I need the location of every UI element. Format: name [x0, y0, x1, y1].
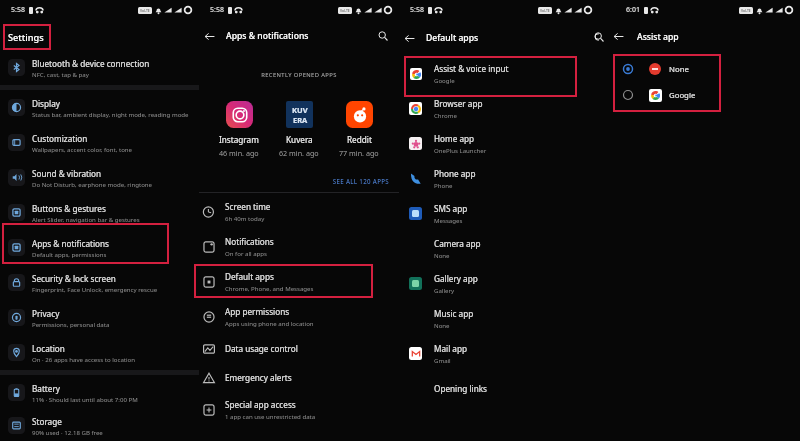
staticText: Default apps — [426, 32, 479, 44]
staticText: 5:58 — [210, 5, 224, 15]
staticText: Home app — [434, 133, 475, 144]
staticText: Messages — [434, 216, 463, 224]
staticText: Phone — [434, 181, 453, 189]
staticText: SMS app — [434, 203, 468, 214]
button[interactable]: Default apps — [199, 264, 399, 299]
staticText: Assist & voice input — [434, 63, 509, 74]
staticText: Kuvera — [286, 134, 313, 145]
staticText: Security & lock screen — [32, 273, 116, 284]
staticText: 46 min. ago — [219, 148, 259, 158]
button[interactable]: Apps & notifications — [0, 230, 199, 265]
staticText: Buttons & gestures — [32, 203, 106, 214]
staticText: Display — [32, 98, 60, 109]
button[interactable]: Browser app — [399, 91, 599, 126]
button[interactable]: Storage — [0, 410, 199, 441]
staticText: None — [434, 251, 450, 259]
staticText: Phone app — [434, 168, 476, 179]
staticText: Special app access — [225, 399, 296, 410]
button[interactable]: Assist & voice input — [399, 56, 599, 91]
button[interactable]: Opening links — [399, 371, 599, 406]
button[interactable]: KUV — [279, 101, 319, 158]
button[interactable]: SEE ALL 120 APPS — [199, 177, 389, 185]
button[interactable]: App permissions — [199, 299, 399, 334]
staticText: 62 min. ago — [279, 148, 319, 158]
staticText: Apps & notifications — [226, 30, 309, 42]
staticText: On for all apps — [225, 249, 267, 257]
staticText: Data usage control — [225, 343, 298, 354]
staticText: Gallery — [434, 286, 455, 294]
staticText: Gallery app — [434, 273, 478, 284]
staticText: RECENTLY OPENED APPS — [199, 71, 399, 79]
staticText: Music app — [434, 308, 474, 319]
staticText: Do Not Disturb, earphone mode, ringtone — [32, 180, 153, 188]
button[interactable]: Privacy — [0, 300, 199, 335]
button[interactable]: Instagram — [219, 101, 259, 158]
staticText: Camera app — [434, 238, 481, 249]
staticText: Customization — [32, 133, 88, 144]
button[interactable]: Back — [204, 31, 215, 42]
button[interactable]: Location — [0, 335, 199, 370]
staticText: Emergency alerts — [225, 372, 292, 383]
staticText: VoLTE — [140, 8, 150, 13]
staticText: Screen time — [225, 201, 271, 212]
button[interactable]: Google — [599, 82, 800, 108]
button[interactable]: Search — [594, 32, 604, 42]
staticText: Gmail — [434, 356, 451, 364]
staticText: None — [669, 64, 689, 75]
button[interactable]: Camera app — [399, 231, 599, 266]
button[interactable]: Battery — [0, 375, 199, 410]
staticText: Reddit — [347, 134, 372, 145]
staticText: Google — [669, 90, 696, 101]
button[interactable]: Data usage control — [199, 334, 399, 363]
staticText: Apps & notifications — [32, 238, 110, 249]
button[interactable]: Display — [0, 90, 199, 125]
staticText: Instagram — [219, 134, 259, 145]
button[interactable]: Reddit — [339, 101, 379, 158]
staticText: Opening links — [434, 383, 488, 394]
button[interactable]: Phone app — [399, 161, 599, 196]
button[interactable]: None — [599, 56, 800, 82]
staticText: Wallpapers, accent color, font, tone — [32, 145, 133, 153]
staticText: 77 min. ago — [339, 148, 379, 158]
staticText: 6:01 — [626, 5, 640, 15]
button[interactable]: Customization — [0, 125, 199, 160]
staticText: Notifications — [225, 236, 274, 247]
button[interactable]: Notifications — [199, 229, 399, 264]
button[interactable]: Sound & vibration — [0, 160, 199, 195]
button[interactable]: Home app — [399, 126, 599, 161]
button[interactable]: Back — [404, 33, 415, 44]
button[interactable]: Music app — [399, 301, 599, 336]
staticText: 6h 40m today — [225, 214, 265, 222]
button[interactable]: Buttons & gestures — [0, 195, 199, 230]
staticText: Sound & vibration — [32, 168, 102, 179]
staticText: Default apps — [225, 271, 274, 282]
staticText: VoLTE — [340, 8, 350, 13]
button[interactable]: Bluetooth & device connection — [0, 50, 199, 85]
button[interactable]: Security & lock screen — [0, 265, 199, 300]
staticText: ERA — [293, 115, 308, 125]
staticText: None — [434, 321, 450, 329]
staticText: Chrome, Phone, and Messages — [225, 284, 314, 292]
staticText: Default apps, permissions — [32, 250, 107, 258]
staticText: 90% used · 12.18 GB free — [32, 428, 103, 436]
staticText: Chrome — [434, 111, 457, 119]
button[interactable]: Special app access — [199, 392, 399, 427]
button[interactable]: Emergency alerts — [199, 363, 399, 392]
button[interactable]: Search — [594, 33, 604, 43]
staticText: KUV — [292, 105, 308, 115]
staticText: 5:58 — [410, 5, 424, 15]
staticText: Privacy — [32, 308, 60, 319]
staticText: Bluetooth & device connection — [32, 58, 150, 69]
button[interactable]: Search — [378, 31, 388, 41]
staticText: Fingerprint, Face Unlock, emergency resc… — [32, 285, 158, 293]
staticText: On · 26 apps have access to location — [32, 355, 136, 363]
button[interactable]: SMS app — [399, 196, 599, 231]
button[interactable]: Screen time — [199, 194, 399, 229]
staticText: Mail app — [434, 343, 468, 354]
staticText: 1 app can use unrestricted data — [225, 412, 316, 420]
button[interactable]: Back — [613, 31, 624, 42]
button[interactable]: Mail app — [399, 336, 599, 371]
staticText: Battery — [32, 383, 61, 394]
button[interactable]: Gallery app — [399, 266, 599, 301]
staticText: Storage — [32, 416, 62, 427]
